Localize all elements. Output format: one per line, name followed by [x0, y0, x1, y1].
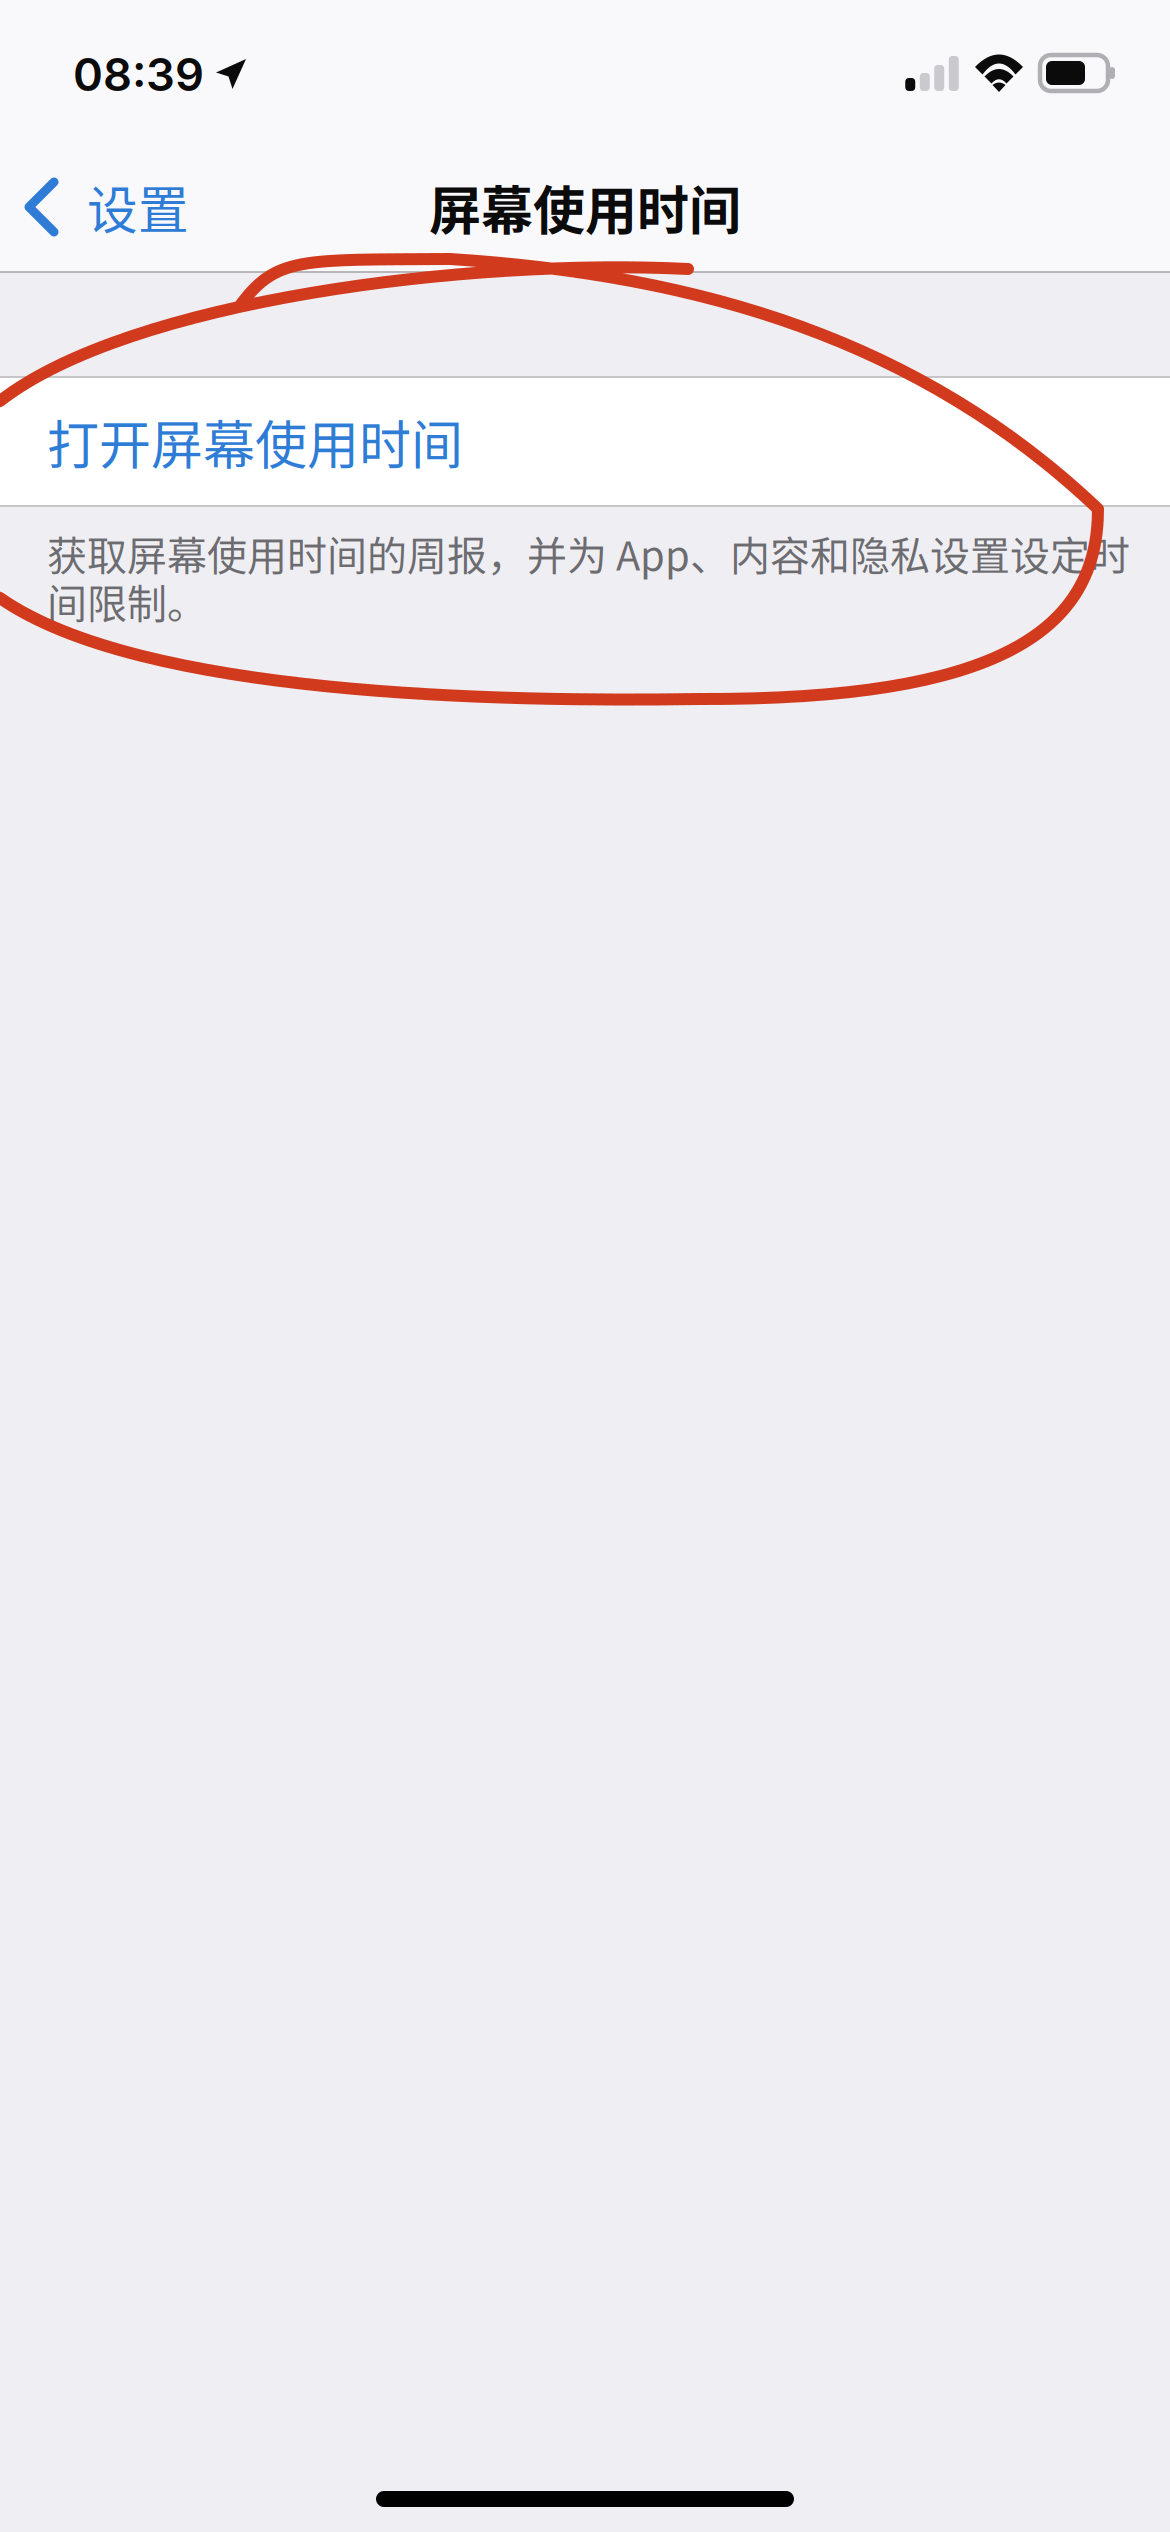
button[interactable]: 设置	[0, 141, 219, 273]
staticText: 设置	[87, 170, 189, 244]
staticText: 打开屏幕使用时间	[47, 404, 463, 479]
staticText: 获取屏幕使用时间的周报，并为 App、内容和隐私设置设定时间限制。	[47, 529, 1130, 625]
staticText: 08:39	[73, 47, 204, 102]
button[interactable]: 打开屏幕使用时间	[0, 376, 1170, 507]
staticText: 屏幕使用时间	[429, 169, 741, 245]
